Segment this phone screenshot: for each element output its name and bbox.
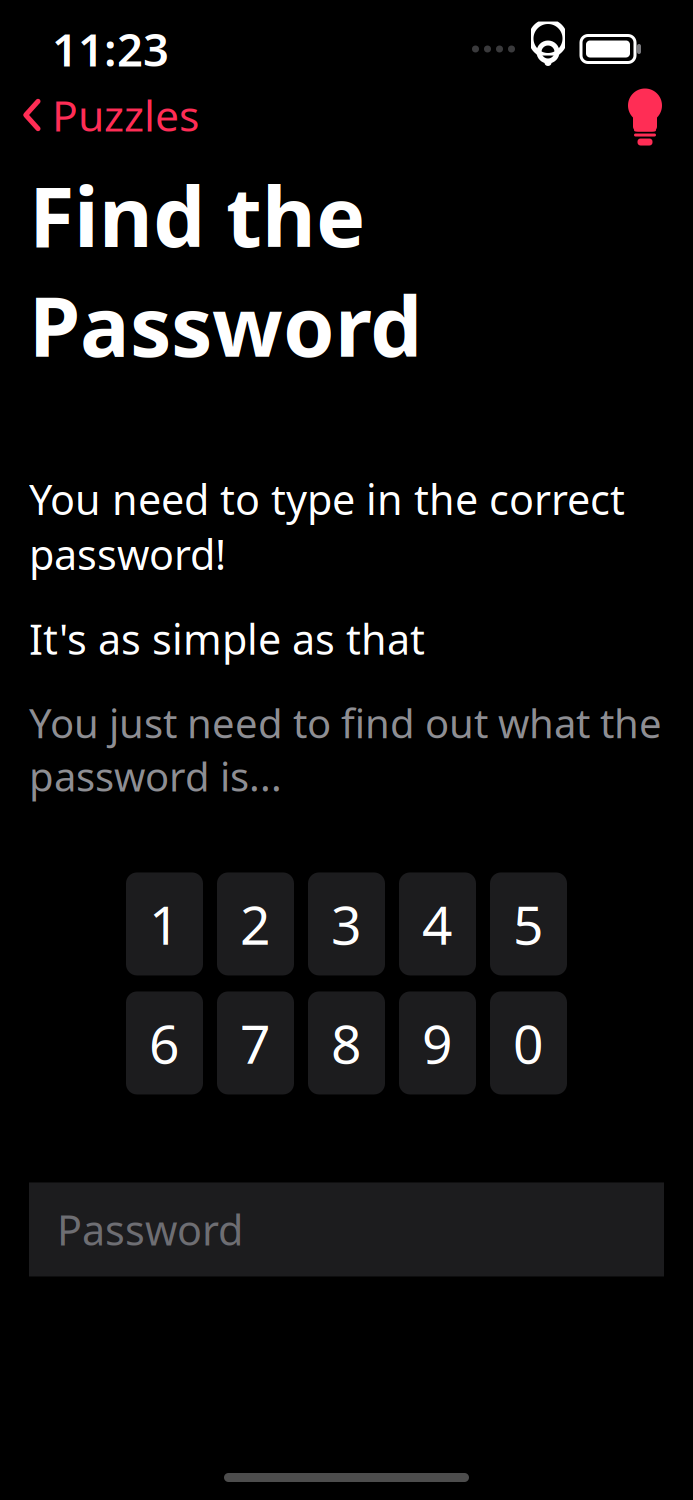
staticText: 7 xyxy=(240,1007,271,1078)
button[interactable]: 5 xyxy=(490,872,567,975)
staticText: 1 xyxy=(149,888,180,959)
button[interactable]: 6 xyxy=(126,991,203,1094)
staticText: 9 xyxy=(422,1007,453,1078)
button[interactable]: 1 xyxy=(126,872,203,975)
staticText: 4 xyxy=(422,888,453,959)
button[interactable]: 7 xyxy=(217,991,294,1094)
staticText: Puzzles xyxy=(52,87,199,143)
button[interactable]: Password xyxy=(29,1182,664,1276)
button[interactable]: Hint xyxy=(615,85,675,145)
button[interactable]: 8 xyxy=(308,991,385,1094)
staticText: It's as simple as that xyxy=(29,611,425,666)
staticText: 6 xyxy=(149,1007,180,1078)
staticText: Password xyxy=(57,1202,243,1257)
staticText: You need to type in the correct password… xyxy=(29,472,625,581)
staticText: 5 xyxy=(513,888,544,959)
button[interactable]: Puzzles xyxy=(18,79,203,151)
staticText: You just need to find out what the passw… xyxy=(29,696,662,802)
button[interactable]: 4 xyxy=(399,872,476,975)
staticText: 11:23 xyxy=(52,19,169,79)
staticText: 3 xyxy=(331,888,362,959)
button[interactable]: 9 xyxy=(399,991,476,1094)
button[interactable]: 2 xyxy=(217,872,294,975)
staticText: 8 xyxy=(331,1007,362,1078)
button[interactable]: 0 xyxy=(490,991,567,1094)
staticText: 0 xyxy=(513,1007,544,1078)
staticText: Find the Password xyxy=(29,160,422,380)
button[interactable]: 3 xyxy=(308,872,385,975)
staticText: 2 xyxy=(240,888,271,959)
